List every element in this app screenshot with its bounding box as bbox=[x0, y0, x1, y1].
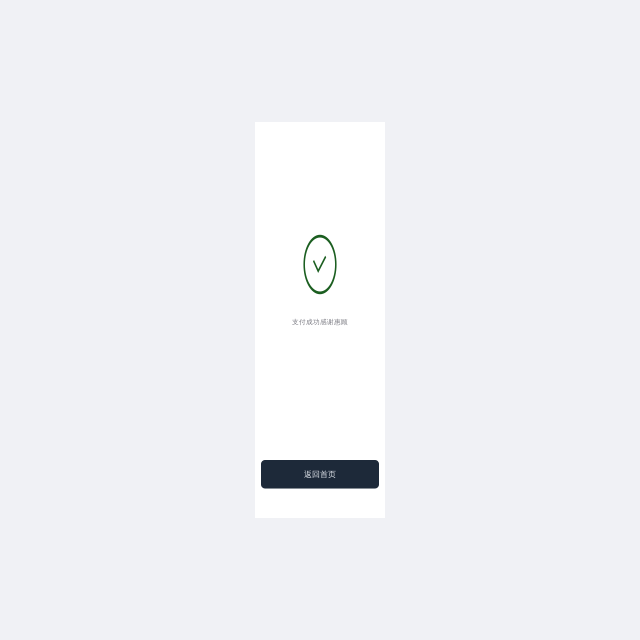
button[interactable]: 返回首页 bbox=[261, 460, 379, 488]
staticText: 返回首页 bbox=[304, 469, 336, 479]
staticText: 支付成功感谢惠顾 bbox=[292, 318, 348, 326]
